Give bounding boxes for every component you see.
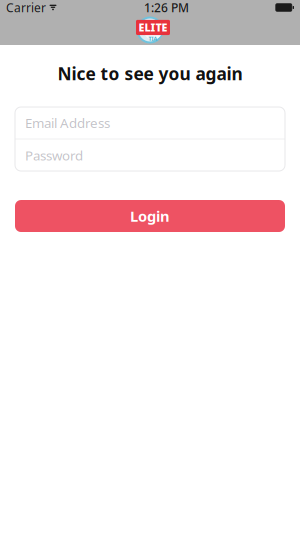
- staticText: Carrier: [6, 0, 46, 15]
- staticText: Email Address: [25, 114, 110, 132]
- button[interactable]: Password: [15, 139, 285, 171]
- staticText: 1:26 PM: [144, 0, 189, 15]
- staticText: Password: [25, 146, 83, 164]
- staticText: Login: [130, 206, 170, 226]
- button[interactable]: Email Address: [15, 107, 285, 138]
- staticText: TIA: [148, 35, 157, 42]
- staticText: ELITE: [138, 20, 167, 35]
- button[interactable]: Login: [15, 200, 285, 232]
- staticText: Nice to see you again: [57, 62, 242, 85]
